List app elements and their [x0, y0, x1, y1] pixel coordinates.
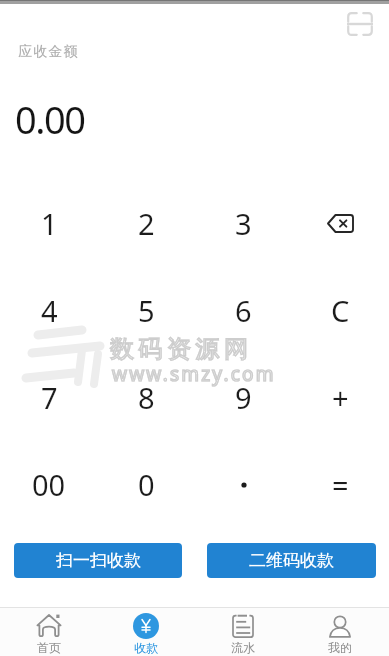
- staticText: 0: [138, 465, 155, 504]
- staticText: 0.00: [15, 93, 85, 145]
- staticText: 2: [138, 204, 155, 243]
- button[interactable]: 收款: [97, 608, 194, 656]
- staticText: 5: [138, 291, 155, 330]
- button[interactable]: [195, 441, 292, 528]
- button[interactable]: 1: [0, 180, 98, 267]
- staticText: 二维码收款: [249, 550, 334, 571]
- staticText: C: [331, 291, 350, 330]
- button[interactable]: 2: [98, 180, 195, 267]
- staticText: 00: [32, 465, 66, 504]
- button[interactable]: 7: [0, 354, 98, 441]
- staticText: 首页: [37, 640, 61, 655]
- button[interactable]: 00: [0, 441, 98, 528]
- button[interactable]: 首页: [0, 608, 97, 656]
- staticText: www.smzy.com: [112, 361, 276, 387]
- button[interactable]: 5: [98, 267, 195, 354]
- button[interactable]: C: [292, 267, 389, 354]
- staticText: 我的: [328, 640, 352, 655]
- button[interactable]: =: [292, 441, 389, 528]
- staticText: 流水: [231, 640, 255, 655]
- staticText: 1: [41, 204, 58, 243]
- button[interactable]: [344, 9, 376, 39]
- staticText: 数码资源网: [110, 334, 253, 364]
- button[interactable]: [292, 180, 389, 267]
- button[interactable]: 4: [0, 267, 98, 354]
- button[interactable]: 9: [195, 354, 292, 441]
- staticText: 7: [41, 378, 58, 417]
- staticText: 6: [235, 291, 252, 330]
- staticText: =: [332, 465, 349, 504]
- button[interactable]: 6: [195, 267, 292, 354]
- staticText: +: [332, 378, 349, 417]
- staticText: 收款: [134, 640, 158, 655]
- button[interactable]: 我的: [291, 608, 388, 656]
- staticText: 9: [235, 378, 252, 417]
- button[interactable]: +: [292, 354, 389, 441]
- button[interactable]: 0: [98, 441, 195, 528]
- button[interactable]: 3: [195, 180, 292, 267]
- staticText: 8: [138, 378, 155, 417]
- button[interactable]: 流水: [194, 608, 291, 656]
- button[interactable]: 扫一扫收款: [14, 543, 182, 578]
- staticText: 扫一扫收款: [56, 550, 141, 571]
- staticText: 应收金额: [18, 43, 79, 61]
- staticText: 4: [41, 291, 58, 330]
- button[interactable]: 8: [98, 354, 195, 441]
- button[interactable]: 二维码收款: [207, 543, 376, 578]
- staticText: 3: [235, 204, 252, 243]
